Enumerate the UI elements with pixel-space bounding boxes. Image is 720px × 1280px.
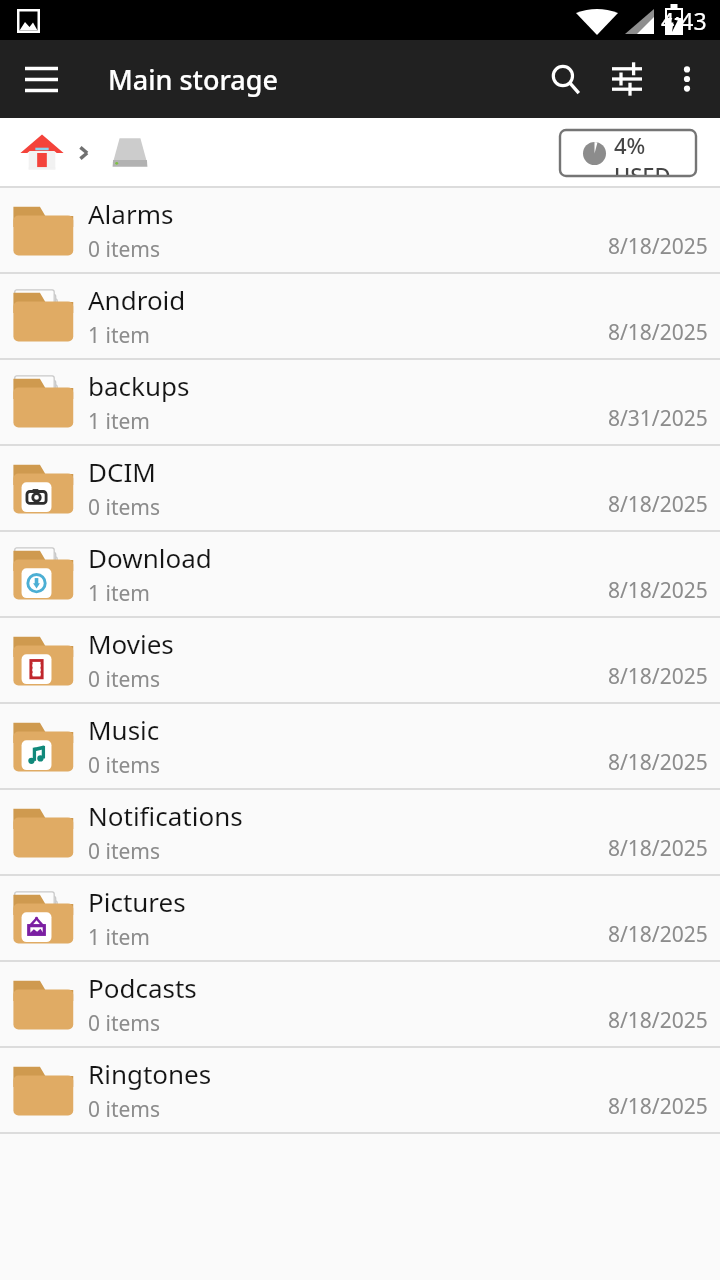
button[interactable]: DCIM <box>0 446 720 532</box>
staticText: 1 item <box>88 923 150 952</box>
staticText: 8/18/2025 <box>608 318 708 347</box>
button[interactable]: Alarms <box>0 188 720 274</box>
staticText: Movies <box>88 626 174 661</box>
staticText: 1 item <box>88 321 150 350</box>
staticText: 0 items <box>88 665 161 694</box>
staticText: 1 item <box>88 407 150 436</box>
staticText: 8/18/2025 <box>608 662 708 691</box>
staticText: 4% USED <box>614 130 697 176</box>
staticText: 0 items <box>88 1095 161 1124</box>
button[interactable]: Main storage <box>100 128 160 178</box>
button[interactable]: Download <box>0 532 720 618</box>
staticText: 8/18/2025 <box>608 232 708 261</box>
staticText: 8/18/2025 <box>608 1092 708 1121</box>
staticText: Ringtones <box>88 1056 212 1091</box>
staticText: DCIM <box>88 454 156 489</box>
staticText: backups <box>88 368 190 403</box>
button[interactable]: Search <box>534 48 596 110</box>
button[interactable]: 4% USED <box>572 130 708 176</box>
staticText: Main storage <box>108 61 278 98</box>
staticText: Pictures <box>88 884 186 919</box>
button[interactable]: Notifications <box>0 790 720 876</box>
staticText: Notifications <box>88 798 243 833</box>
button[interactable]: Sort and view options <box>596 48 658 110</box>
button[interactable]: Home <box>14 125 70 181</box>
staticText: Alarms <box>88 196 174 231</box>
staticText: 8/18/2025 <box>608 920 708 949</box>
staticText: 0 items <box>88 837 161 866</box>
staticText: 0 items <box>88 235 161 264</box>
staticText: 8/18/2025 <box>608 748 708 777</box>
staticText: 8/18/2025 <box>608 490 708 519</box>
staticText: Music <box>88 712 160 747</box>
button[interactable]: Ringtones <box>0 1048 720 1134</box>
staticText: 0 items <box>88 751 161 780</box>
button[interactable]: Pictures <box>0 876 720 962</box>
staticText: 8/18/2025 <box>608 834 708 863</box>
button[interactable]: Open navigation drawer <box>12 50 70 108</box>
staticText: Download <box>88 540 212 575</box>
staticText: 1 item <box>88 579 150 608</box>
staticText: 8/31/2025 <box>608 404 708 433</box>
button[interactable]: Movies <box>0 618 720 704</box>
staticText: Android <box>88 282 186 317</box>
button[interactable]: More options <box>658 50 716 108</box>
staticText: Podcasts <box>88 970 197 1005</box>
staticText: 8/18/2025 <box>608 576 708 605</box>
staticText: 4:43 <box>661 5 707 36</box>
staticText: 0 items <box>88 493 161 522</box>
button[interactable]: backups <box>0 360 720 446</box>
button[interactable]: Music <box>0 704 720 790</box>
staticText: 0 items <box>88 1009 161 1038</box>
button[interactable]: Podcasts <box>0 962 720 1048</box>
button[interactable]: Android <box>0 274 720 360</box>
staticText: 8/18/2025 <box>608 1006 708 1035</box>
